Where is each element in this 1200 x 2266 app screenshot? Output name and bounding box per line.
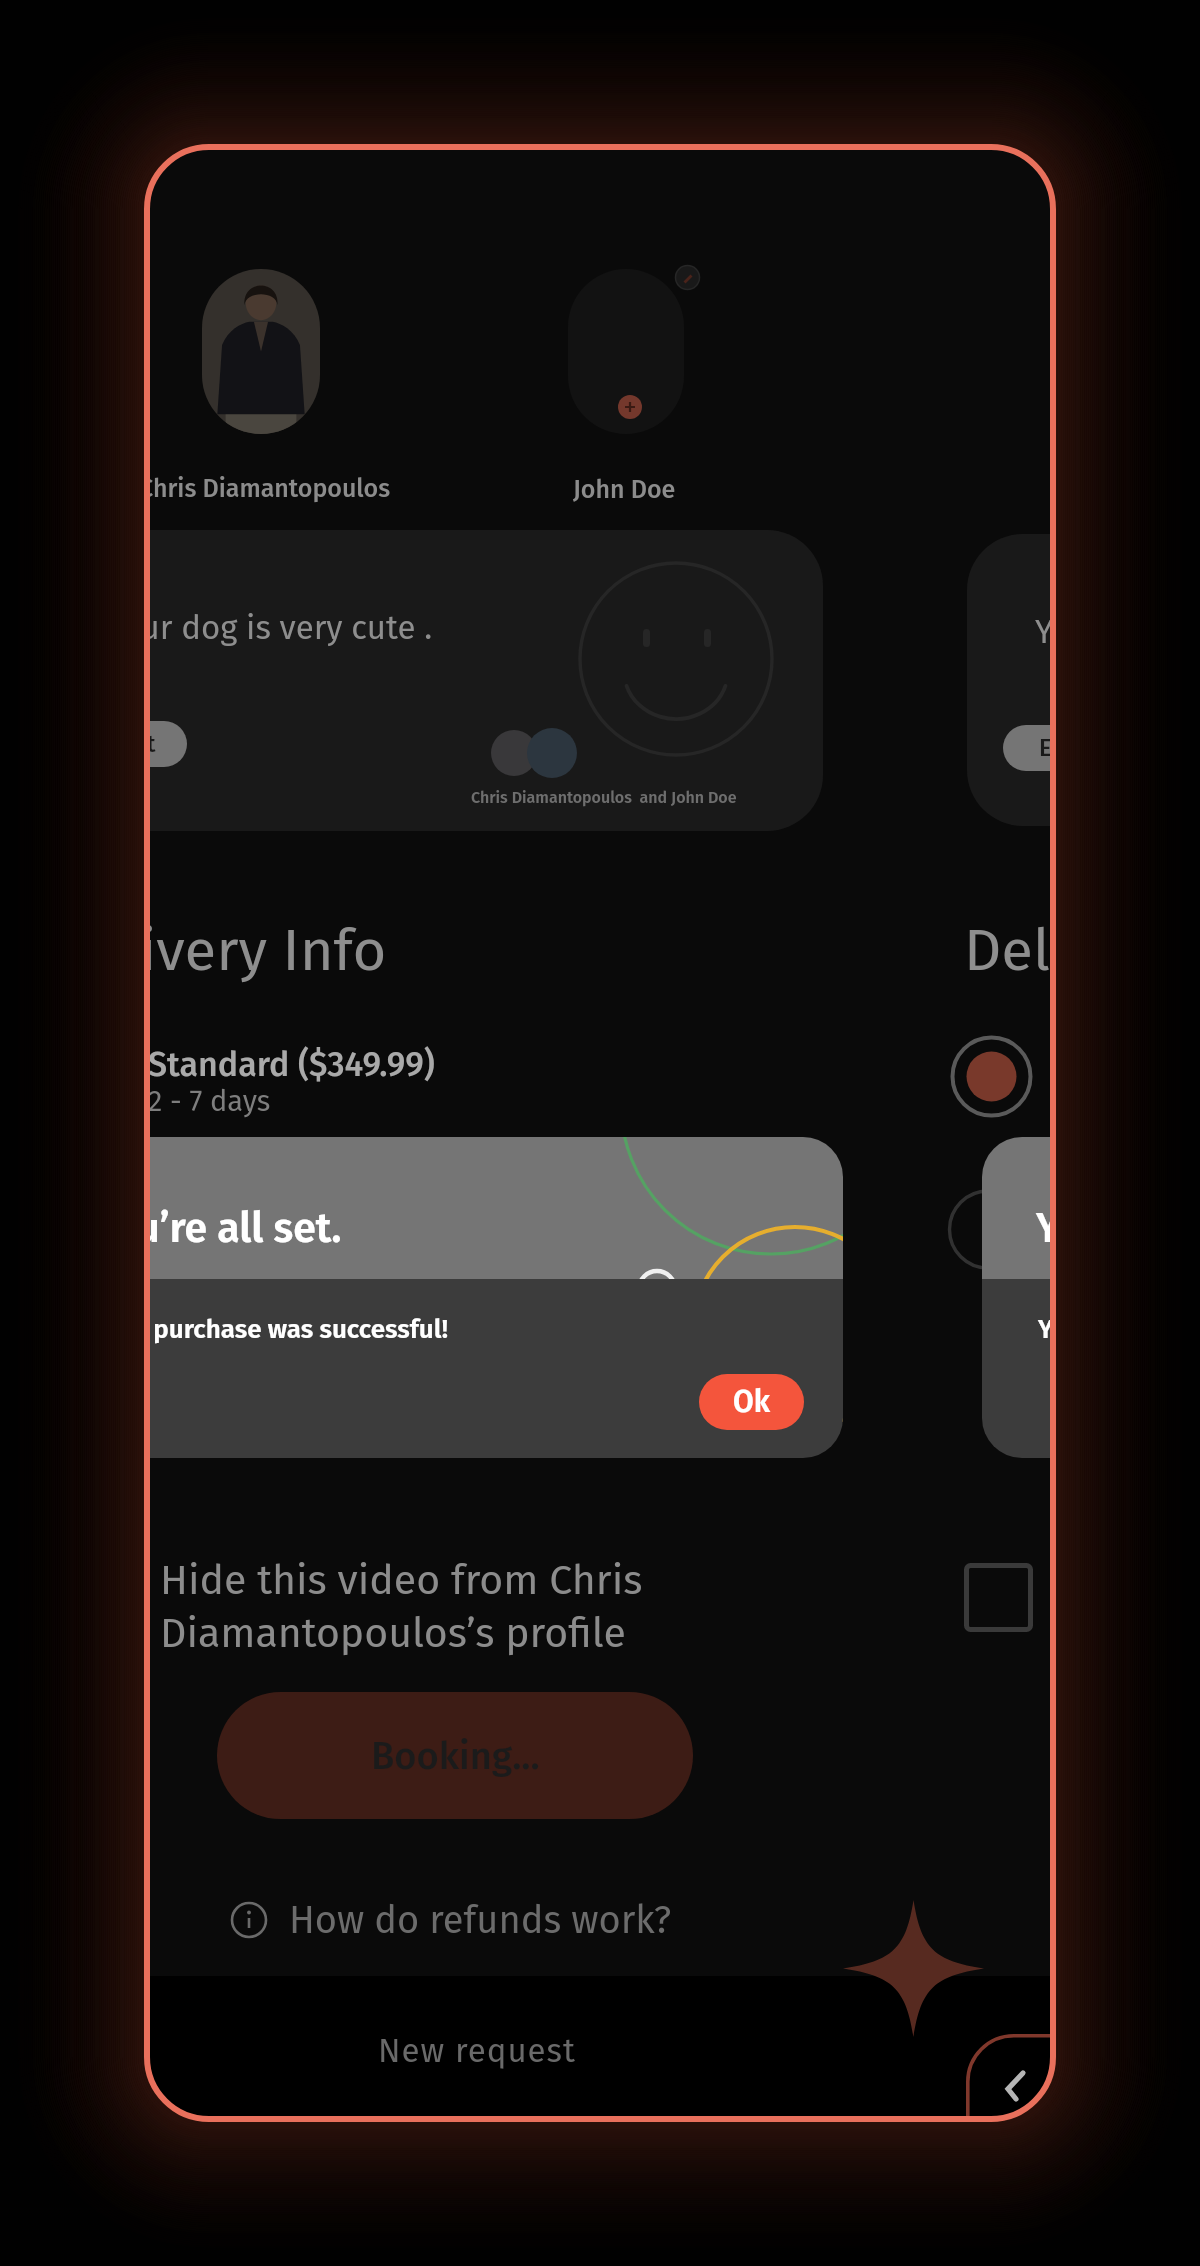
- staticText: Chris Diamantopoulos and John Doe: [471, 788, 737, 807]
- staticText: You’re all set.: [147, 1204, 342, 1253]
- button[interactable]: [227, 1885, 687, 1955]
- button[interactable]: Hide video checkbox: [964, 1563, 1031, 1630]
- staticText: Standard ($349.99): [148, 1044, 435, 1085]
- button[interactable]: Booking...: [217, 1692, 693, 1819]
- staticText: John Doe: [573, 475, 676, 505]
- staticText: Delivery Info: [964, 916, 1053, 986]
- button[interactable]: New request: [307, 2016, 647, 2086]
- button[interactable]: Back: [966, 2034, 1053, 2119]
- button[interactable]: Your dog is very cute .: [147, 530, 823, 831]
- staticText: Edit: [1039, 734, 1053, 763]
- staticText: New request: [378, 2031, 576, 2071]
- staticText: Split: [147, 730, 156, 759]
- button[interactable]: Ok: [699, 1374, 804, 1430]
- staticText: You’re all set.: [1036, 1204, 1053, 1253]
- staticText: Hide this video from Chris Diamantopoulo…: [160, 1556, 690, 1658]
- button[interactable]: John Doe avatar: [568, 269, 684, 434]
- other: Edit avatar: [671, 261, 704, 294]
- staticText: How do refunds work?: [289, 1897, 672, 1943]
- button[interactable]: Split: [147, 721, 187, 767]
- staticText: Chris Diamantopoulos: [147, 474, 391, 504]
- staticText: Your purchase was successful!: [1038, 1314, 1053, 1345]
- staticText: Your dog is very cute .: [147, 608, 433, 648]
- staticText: Booking...: [371, 1733, 540, 1779]
- staticText: Delivery Info: [147, 916, 387, 986]
- staticText: Ok: [733, 1384, 770, 1420]
- staticText: Your dog is very cute .: [1035, 612, 1053, 652]
- staticText: 2 - 7 days: [148, 1084, 271, 1119]
- staticText: Your purchase was successful!: [147, 1314, 448, 1345]
- button[interactable]: Select standard delivery: [950, 1035, 1033, 1118]
- button[interactable]: Chris Diamantopoulos avatar: [202, 269, 320, 434]
